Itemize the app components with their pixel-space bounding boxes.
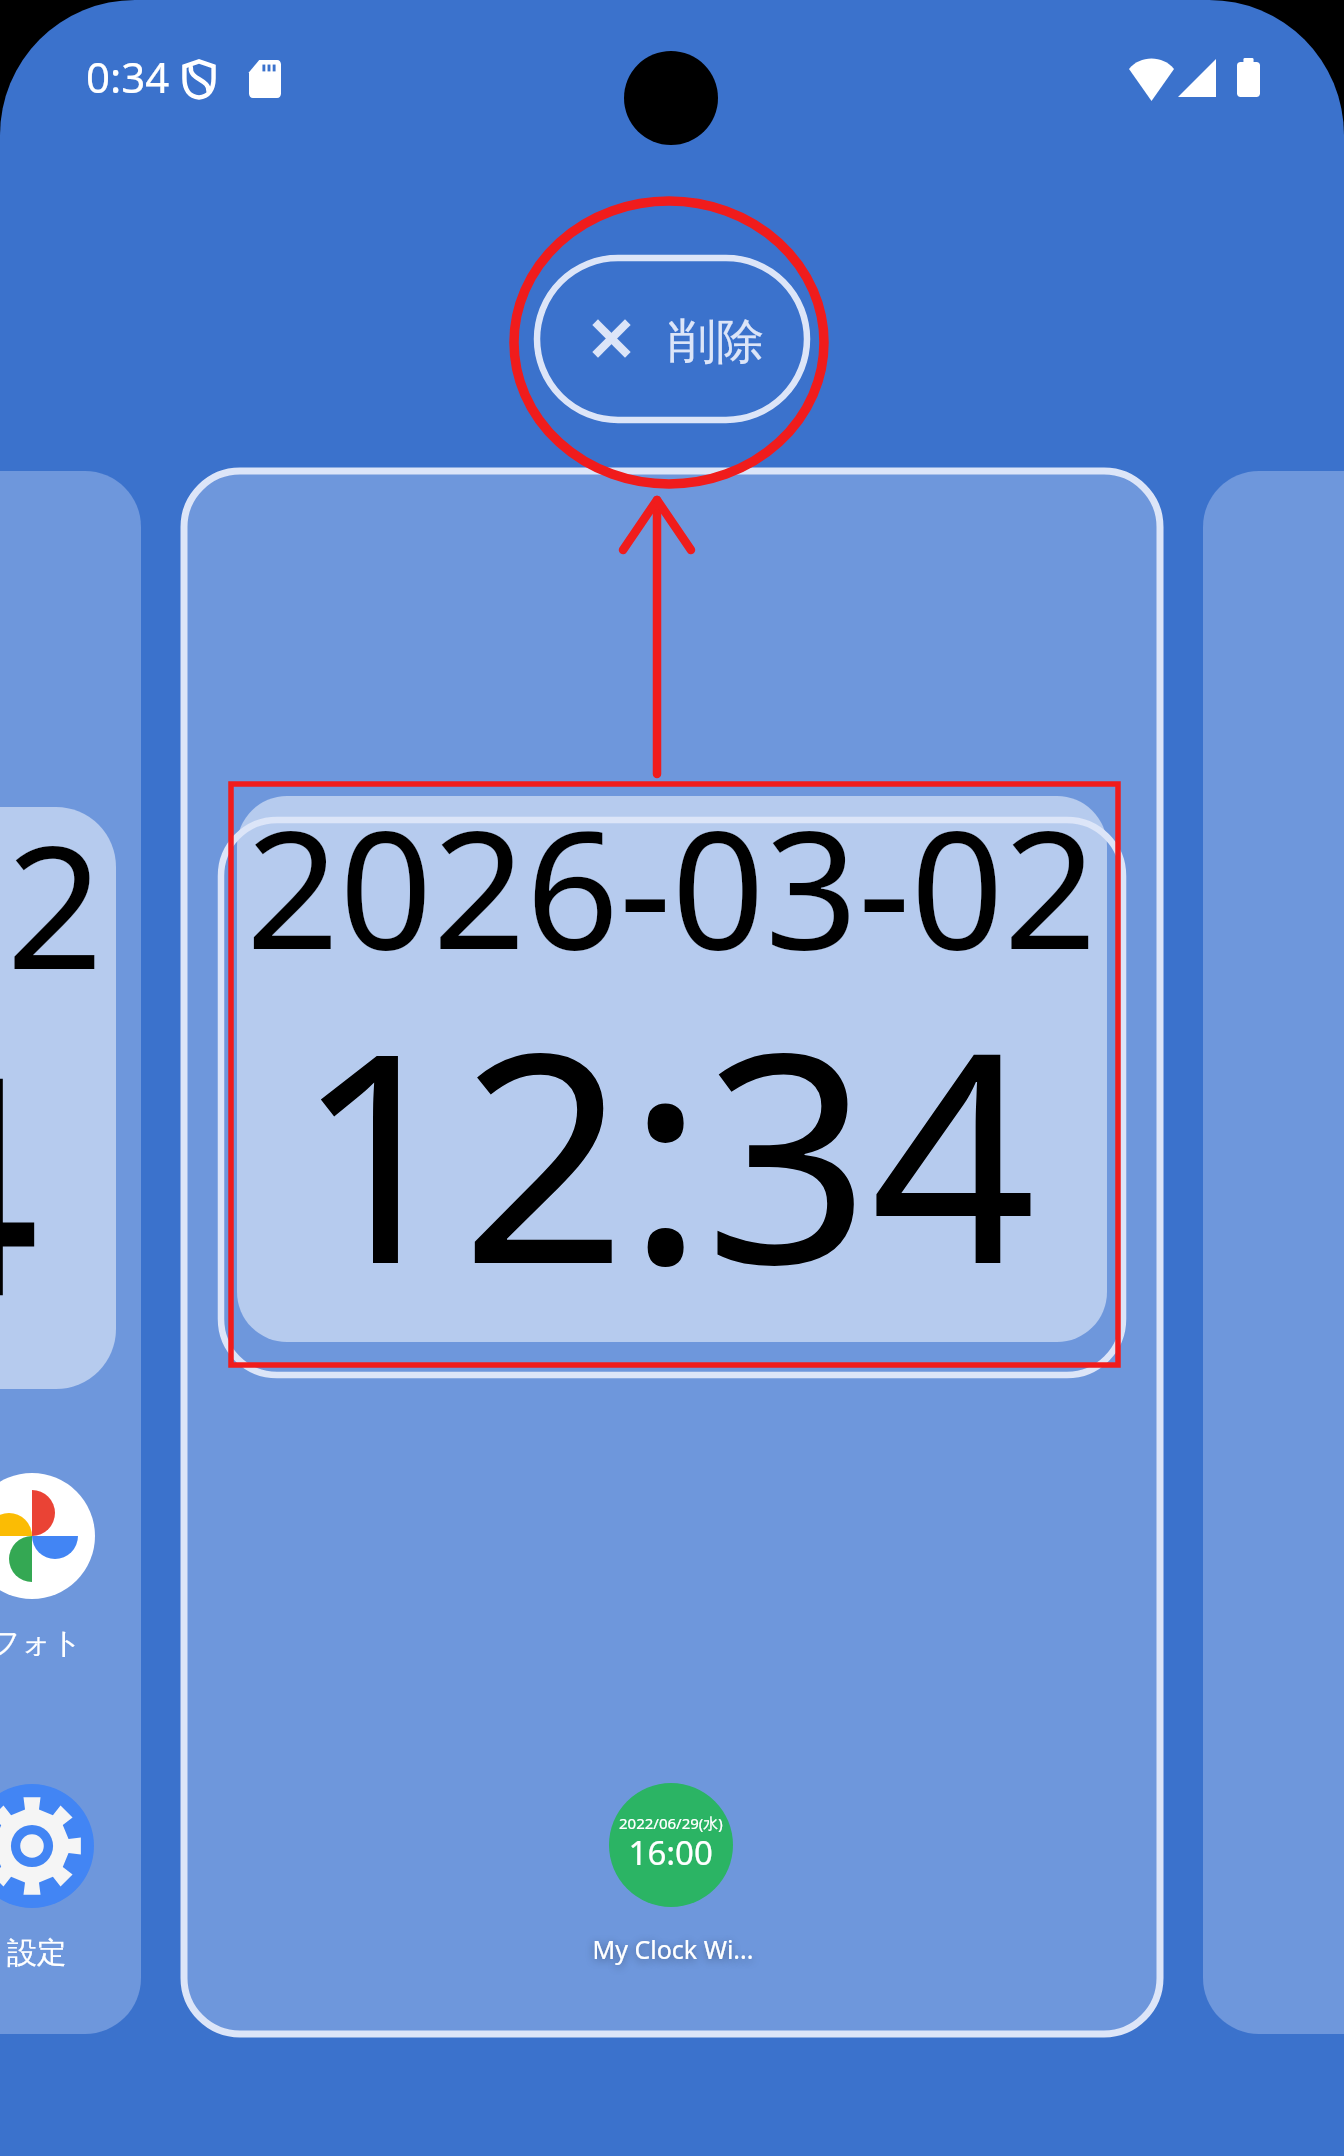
button[interactable]: Settings bbox=[0, 1784, 94, 1908]
button[interactable]: Clock widget 2026-03-02 12:34 bbox=[238, 823, 1105, 1343]
button[interactable]: Photos bbox=[0, 1473, 95, 1599]
staticText: 削除 bbox=[668, 312, 764, 372]
staticText: 0:34 bbox=[86, 48, 170, 105]
button[interactable]: My Clock Widget app bbox=[609, 1783, 733, 1907]
button[interactable]: 削除 bbox=[533, 254, 811, 424]
